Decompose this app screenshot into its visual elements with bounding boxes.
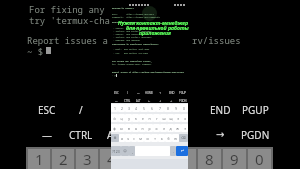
staticText: For fixing any (29, 3, 105, 15)
button[interactable]: к (132, 114, 139, 122)
button[interactable]: — (98, 99, 133, 121)
button[interactable]: END (203, 99, 238, 121)
button[interactable]: , (129, 146, 135, 156)
staticText: CTRL (124, 99, 131, 103)
button[interactable]: ↓ (168, 124, 203, 146)
button[interactable]: н (146, 114, 153, 122)
button[interactable]: ф (111, 124, 118, 132)
button[interactable]: CTRL (64, 124, 98, 146)
button[interactable]: т (151, 134, 158, 142)
button[interactable]: / (122, 89, 133, 96)
button[interactable]: ю (172, 134, 179, 142)
button[interactable]: 3 (76, 149, 98, 169)
button[interactable]: 1 (28, 149, 50, 169)
button[interactable]: 4 (132, 104, 140, 112)
button[interactable]: я (119, 134, 125, 142)
button[interactable]: ч (125, 134, 131, 142)
button[interactable]: CTRL (122, 97, 133, 104)
button[interactable]: ⚙ (111, 134, 119, 142)
button[interactable]: х (181, 114, 188, 122)
button[interactable]: ALT (98, 124, 133, 146)
staticText: — (111, 103, 121, 117)
staticText: м (139, 136, 142, 141)
button[interactable]: ↓ (155, 97, 166, 104)
button[interactable]: 7 (156, 104, 164, 112)
button[interactable]: END (166, 89, 177, 96)
button[interactable]: р (146, 124, 153, 132)
button[interactable]: ESC (111, 89, 122, 96)
button[interactable]: ALT (133, 97, 144, 104)
button[interactable]: е (139, 114, 146, 122)
button[interactable]: ← (133, 124, 168, 146)
button[interactable]: й (111, 114, 118, 122)
button[interactable]: 0 (248, 149, 271, 169)
button[interactable]: э (181, 124, 188, 132)
button[interactable]: 6 (148, 149, 171, 169)
button[interactable]: HOME (133, 99, 168, 121)
staticText: Docs: https://termux.dev/docs (112, 13, 155, 16)
button[interactable]: л (160, 124, 167, 132)
button[interactable]: ⌫ (179, 134, 188, 142)
button[interactable]: с (131, 134, 137, 142)
staticText: / (127, 91, 128, 95)
button[interactable]: 8 (164, 104, 172, 112)
button[interactable]: б (165, 134, 172, 142)
button[interactable]: 2 (52, 149, 74, 169)
button[interactable]: у (125, 114, 132, 122)
button[interactable]: г (153, 114, 160, 122)
button[interactable]: 1 (111, 104, 118, 112)
button[interactable]: о (153, 124, 160, 132)
button[interactable]: / (64, 99, 98, 121)
button[interactable]: . (170, 146, 176, 156)
button[interactable]: 4 (100, 149, 122, 169)
button[interactable]: ж (174, 124, 181, 132)
button[interactable]: а (132, 124, 139, 132)
button[interactable]: п (139, 124, 146, 132)
button[interactable]: 9 (223, 149, 246, 169)
button[interactable]: ← (144, 97, 155, 104)
button[interactable]: 2 (118, 104, 125, 112)
staticText: т (154, 136, 156, 141)
button[interactable]: ?123 (111, 146, 121, 156)
button[interactable]: 8 (198, 149, 221, 169)
button[interactable]: — (133, 89, 144, 96)
button[interactable]: — (111, 97, 122, 104)
button[interactable]: ↑ (168, 99, 203, 121)
button[interactable]: → (166, 97, 177, 104)
button[interactable]: щ (167, 114, 174, 122)
button[interactable]: PGDN (177, 97, 188, 104)
button[interactable]: 5 (140, 104, 148, 112)
button[interactable]: PGUP (238, 99, 273, 121)
button[interactable]: 3 (125, 104, 132, 112)
button[interactable]: PGDN (238, 124, 273, 146)
staticText: END (210, 103, 231, 117)
button[interactable]: в (125, 124, 132, 132)
button[interactable]: м (137, 134, 144, 142)
button[interactable]: ь (158, 134, 165, 142)
button[interactable]: — (30, 124, 64, 146)
button[interactable]: 9 (172, 104, 180, 112)
button[interactable]: PGUP (177, 89, 188, 96)
button[interactable]: и (144, 134, 151, 142)
staticText: 6 (151, 106, 153, 111)
button[interactable]: ↵ (176, 146, 188, 156)
button[interactable]: ESC (30, 99, 64, 121)
button[interactable]: 0 (180, 104, 188, 112)
button[interactable]: з (174, 114, 181, 122)
staticText: - Install: pkg install <package> (112, 36, 152, 39)
button[interactable]: ☺ (121, 146, 129, 156)
button[interactable]: ш (160, 114, 167, 122)
staticText: ш (162, 116, 166, 121)
button[interactable]: ы (118, 124, 125, 132)
button[interactable]: ц (118, 114, 125, 122)
button[interactable]: → (203, 124, 238, 146)
button[interactable]: д (167, 124, 174, 132)
staticText: - Install: pkg install <package> (112, 30, 152, 33)
button[interactable]: 7 (173, 149, 196, 169)
button[interactable]: HOME (144, 89, 155, 96)
button[interactable]: 5 (124, 149, 146, 169)
staticText: ↑ (181, 104, 190, 116)
button[interactable]: ↑ (155, 89, 166, 96)
button[interactable]: 6 (148, 104, 156, 112)
